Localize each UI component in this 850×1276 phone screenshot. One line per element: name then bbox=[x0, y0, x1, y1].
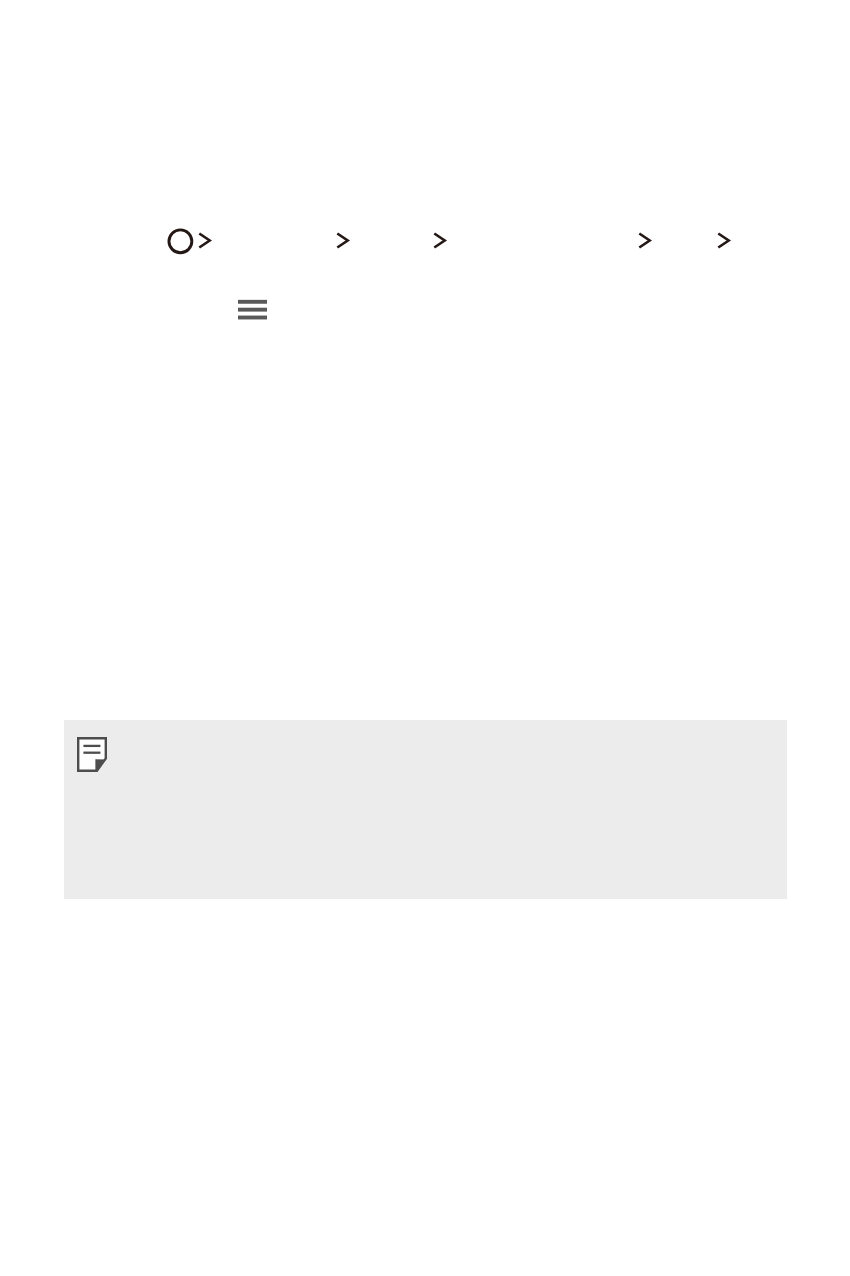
button[interactable]: Open navigation menu bbox=[238, 296, 267, 324]
button[interactable]: Note bbox=[64, 720, 787, 899]
button[interactable]: Home bbox=[167, 228, 194, 255]
